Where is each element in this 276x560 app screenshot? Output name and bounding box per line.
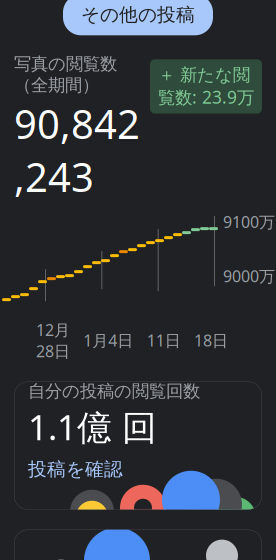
- staticText: 自分の投稿の閲覧回数: [28, 380, 200, 402]
- button[interactable]: 自分の投稿の閲覧回数: [0, 382, 276, 510]
- staticText: 投稿を確認: [28, 458, 123, 481]
- staticText: 写真の閲覧数（全期間）: [14, 53, 117, 96]
- staticText: 9000万: [223, 265, 275, 287]
- staticText: 12月28日: [36, 319, 70, 362]
- staticText: 11日: [147, 330, 181, 351]
- staticText: 9100万: [223, 211, 275, 232]
- staticText: 1月4日: [83, 330, 133, 351]
- staticText: ＋ 新たな閲覧数: 23.9万: [158, 64, 254, 109]
- button[interactable]: その他の投稿: [63, 0, 213, 35]
- button[interactable]: [0, 530, 276, 560]
- staticText: 90,842,243: [14, 97, 140, 203]
- staticText: 1.1億 回: [28, 404, 157, 450]
- staticText: 18日: [194, 330, 228, 351]
- staticText: その他の投稿: [81, 3, 195, 26]
